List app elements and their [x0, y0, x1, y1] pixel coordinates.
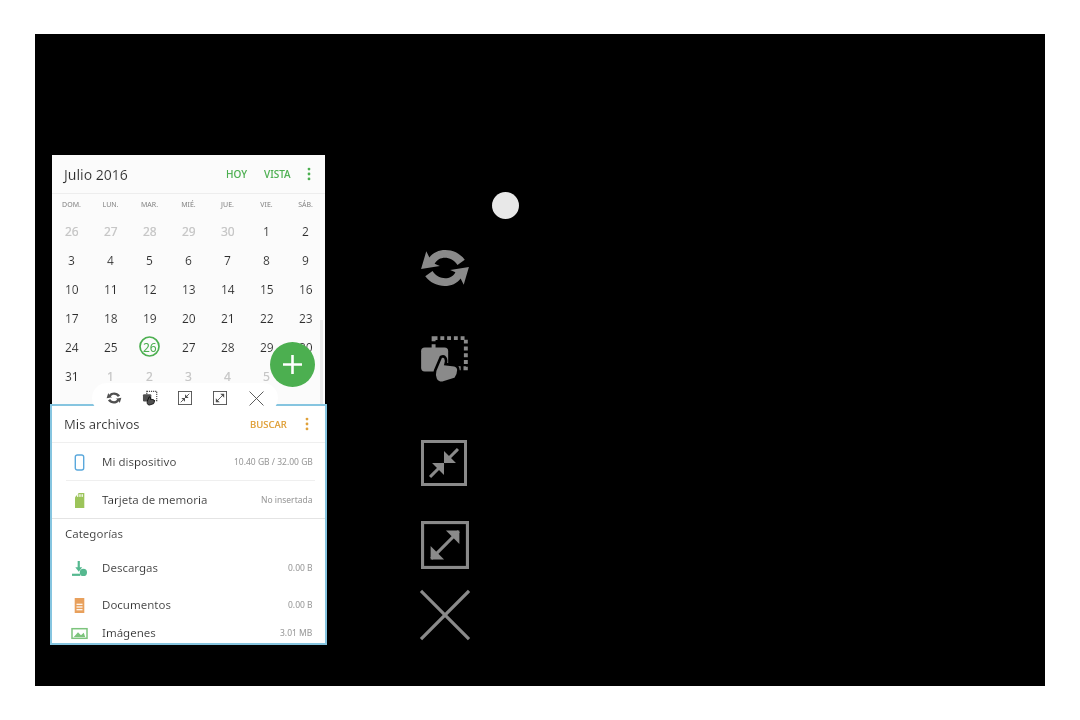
- button[interactable]: 21: [208, 303, 247, 332]
- button[interactable]: 6: [169, 245, 208, 274]
- staticText: MIÉ.: [169, 200, 208, 210]
- button[interactable]: 5: [130, 245, 169, 274]
- button[interactable]: 26: [130, 332, 169, 361]
- button[interactable]: 3: [169, 361, 208, 390]
- button[interactable]: Descargas: [52, 549, 325, 586]
- button[interactable]: 31: [52, 361, 91, 390]
- button[interactable]: 24: [52, 332, 91, 361]
- button[interactable]: Cambiar ventanas: [415, 238, 475, 298]
- button[interactable]: 8: [247, 245, 286, 274]
- button[interactable]: Cambiar: [101, 385, 127, 411]
- button[interactable]: 27: [169, 332, 208, 361]
- staticText: Categorías: [65, 526, 124, 542]
- button[interactable]: HOY: [222, 163, 252, 185]
- button[interactable]: 10: [52, 274, 91, 303]
- button[interactable]: 15: [247, 274, 286, 303]
- button[interactable]: Maximizar: [207, 385, 233, 411]
- button[interactable]: Manejador: [492, 192, 519, 219]
- button[interactable]: VISTA: [260, 163, 295, 185]
- staticText: 1: [107, 368, 114, 384]
- staticText: 28: [143, 223, 157, 239]
- button[interactable]: 3: [52, 245, 91, 274]
- staticText: Julio 2016: [64, 165, 128, 184]
- staticText: 30: [221, 223, 235, 239]
- button[interactable]: Maximizar ventana: [413, 513, 477, 577]
- staticText: 27: [104, 223, 118, 239]
- button[interactable]: 6: [286, 361, 325, 390]
- staticText: HOY: [226, 167, 248, 181]
- button[interactable]: 12: [130, 274, 169, 303]
- button[interactable]: 2: [130, 361, 169, 390]
- staticText: 2: [302, 223, 309, 239]
- button[interactable]: Añadir evento: [270, 342, 315, 387]
- button[interactable]: Minimizar ventana: [413, 432, 475, 494]
- button[interactable]: 14: [208, 274, 247, 303]
- staticText: 15: [260, 281, 274, 297]
- staticText: 0.00 B: [288, 599, 313, 611]
- staticText: Descargas: [102, 560, 159, 576]
- button[interactable]: 26: [52, 216, 91, 245]
- button[interactable]: 27: [91, 216, 130, 245]
- button[interactable]: 29: [169, 216, 208, 245]
- staticText: SÁB.: [286, 200, 325, 210]
- button[interactable]: 29: [247, 332, 286, 361]
- staticText: DOM.: [52, 200, 91, 210]
- button[interactable]: 7: [208, 245, 247, 274]
- staticText: 18: [104, 310, 118, 326]
- staticText: 24: [65, 339, 79, 355]
- staticText: 4: [224, 368, 231, 384]
- staticText: 19: [143, 310, 157, 326]
- button[interactable]: Documentos: [52, 586, 325, 623]
- staticText: 2: [146, 368, 153, 384]
- button[interactable]: 30: [286, 332, 325, 361]
- staticText: 14: [221, 281, 235, 297]
- staticText: 13: [182, 281, 196, 297]
- button[interactable]: 9: [286, 245, 325, 274]
- button[interactable]: Cerrar: [243, 385, 269, 411]
- button[interactable]: 30: [208, 216, 247, 245]
- button[interactable]: Más opciones archivos: [297, 414, 317, 434]
- button[interactable]: 19: [130, 303, 169, 332]
- button[interactable]: 22: [247, 303, 286, 332]
- button[interactable]: Tarjeta de memoria: [52, 481, 325, 518]
- button[interactable]: 17: [52, 303, 91, 332]
- button[interactable]: 23: [286, 303, 325, 332]
- staticText: LUN.: [91, 200, 130, 210]
- button[interactable]: Arrastrar contenido: [137, 385, 163, 411]
- button[interactable]: 5: [247, 361, 286, 390]
- staticText: No insertada: [261, 494, 313, 506]
- button[interactable]: Cerrar ventana: [413, 583, 477, 647]
- staticText: 21: [221, 310, 235, 326]
- button[interactable]: BUSCAR: [246, 414, 291, 435]
- button[interactable]: Minimizar: [172, 385, 198, 411]
- button[interactable]: 20: [169, 303, 208, 332]
- button[interactable]: 18: [91, 303, 130, 332]
- button[interactable]: Más opciones: [299, 164, 319, 184]
- button[interactable]: Imágenes: [52, 623, 325, 643]
- button[interactable]: Arrastrar contenido: [412, 328, 476, 392]
- button[interactable]: 25: [91, 332, 130, 361]
- staticText: 17: [65, 310, 79, 326]
- staticText: 4: [107, 252, 114, 268]
- button[interactable]: Mi dispositivo: [52, 443, 325, 480]
- button[interactable]: 16: [286, 274, 325, 303]
- staticText: 30: [299, 339, 313, 355]
- button[interactable]: 4: [91, 245, 130, 274]
- button[interactable]: 13: [169, 274, 208, 303]
- button[interactable]: 1: [91, 361, 130, 390]
- button[interactable]: 1: [247, 216, 286, 245]
- button[interactable]: 28: [130, 216, 169, 245]
- staticText: 28: [221, 339, 235, 355]
- staticText: 10.40 GB / 32.00 GB: [234, 456, 313, 468]
- button[interactable]: 28: [208, 332, 247, 361]
- staticText: 9: [302, 252, 309, 268]
- staticText: 10: [65, 281, 79, 297]
- button[interactable]: 11: [91, 274, 130, 303]
- staticText: 3: [185, 368, 192, 384]
- staticText: JUE.: [208, 200, 247, 210]
- staticText: 6: [185, 252, 192, 268]
- staticText: 3: [68, 252, 75, 268]
- staticText: 29: [260, 339, 274, 355]
- button[interactable]: 2: [286, 216, 325, 245]
- button[interactable]: 4: [208, 361, 247, 390]
